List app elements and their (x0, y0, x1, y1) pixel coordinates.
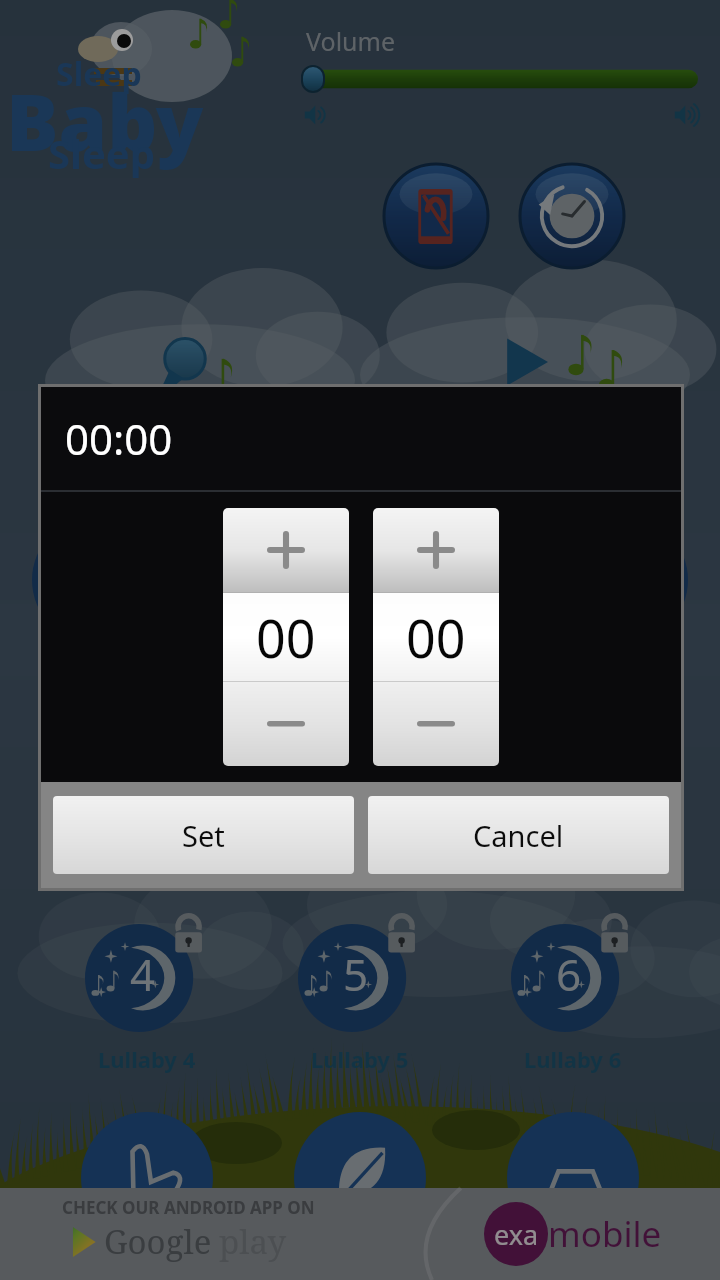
staticText: Cancel (473, 816, 564, 855)
button[interactable]: 00 (223, 593, 349, 681)
staticText: Set (182, 816, 225, 855)
button[interactable]: 6 (507, 912, 639, 1044)
button[interactable]: Silent mode (384, 164, 488, 268)
button[interactable]: Cancel (368, 796, 669, 874)
staticText: exa (494, 1216, 539, 1253)
button[interactable]: 00 (373, 593, 499, 681)
button[interactable]: 5 (294, 912, 426, 1044)
staticText: CHECK OUR ANDROID APP ON (62, 1196, 315, 1219)
button[interactable]: Volume down (300, 98, 334, 132)
button[interactable]: Volume up (670, 98, 704, 132)
staticText: mobile (548, 1210, 662, 1258)
button[interactable]: Leaf (294, 1112, 426, 1244)
button[interactable]: Timer (520, 164, 624, 268)
staticText: Sleep (56, 52, 142, 96)
staticText: 5 (343, 944, 369, 1004)
button[interactable]: 4 (81, 912, 213, 1044)
staticText: Volume (306, 24, 396, 58)
button[interactable] (560, 516, 688, 644)
staticText: Heart beat (565, 652, 684, 682)
button[interactable]: CHECK OUR ANDROID APP ON (0, 1188, 720, 1280)
staticText: Lullaby 4 (98, 1044, 196, 1074)
staticText: 6 (556, 944, 582, 1004)
button[interactable]: Bed (507, 1112, 639, 1244)
staticText: play (219, 1219, 287, 1264)
button[interactable] (32, 516, 160, 644)
staticText: Sleep (48, 126, 155, 180)
button[interactable]: Decrement (373, 682, 499, 766)
button[interactable]: Hand (81, 1112, 213, 1244)
staticText: Google (104, 1219, 212, 1264)
button[interactable] (300, 66, 704, 92)
staticText: 00:00 (65, 410, 173, 467)
staticText: 4 (130, 944, 156, 1004)
staticText: 00 (256, 602, 316, 673)
staticText: 00 (406, 602, 466, 673)
staticText: Lullaby 5 (311, 1044, 409, 1074)
button[interactable]: Decrement (223, 682, 349, 766)
button[interactable]: Increment (373, 508, 499, 592)
button[interactable]: Increment (223, 508, 349, 592)
staticText: Baby (6, 68, 204, 174)
button[interactable]: Set (53, 796, 354, 874)
staticText: Lullaby 6 (524, 1044, 622, 1074)
